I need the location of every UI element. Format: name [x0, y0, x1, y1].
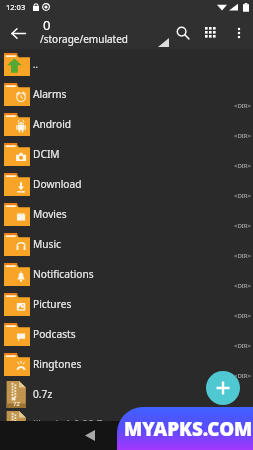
- staticText: Pictures: [33, 297, 72, 311]
- staticText: /storage/emulated: [40, 32, 128, 46]
- staticText: <DIR>: [234, 102, 252, 110]
- staticText: Alarms: [33, 87, 67, 101]
- staticText: 12:03: [6, 2, 26, 12]
- staticText: Ringtones: [33, 357, 82, 371]
- button[interactable]: Android: [0, 109, 253, 139]
- button[interactable]: Grid view: [198, 20, 224, 46]
- button[interactable]: DCIM: [0, 139, 253, 169]
- button[interactable]: Pictures: [0, 289, 253, 319]
- staticText: <DIR>: [234, 162, 252, 170]
- button[interactable]: Ringtones: [0, 349, 253, 379]
- button[interactable]: Notifications: [0, 259, 253, 289]
- staticText: libusb-1.0.23.7z: [33, 417, 108, 431]
- staticText: Notifications: [33, 267, 94, 281]
- staticText: Music: [33, 237, 61, 251]
- button[interactable]: 7Z: [0, 409, 253, 439]
- staticText: ..: [33, 58, 38, 70]
- other: Back: [85, 430, 95, 441]
- staticText: <DIR>: [234, 132, 252, 140]
- button[interactable]: ..: [0, 49, 253, 79]
- staticText: <DIR>: [234, 312, 252, 320]
- staticText: Podcasts: [33, 327, 76, 341]
- button[interactable]: Alarms: [0, 79, 253, 109]
- staticText: <DIR>: [234, 342, 252, 350]
- button[interactable]: Podcasts: [0, 319, 253, 349]
- staticText: Movies: [33, 207, 67, 221]
- button[interactable]: More options: [226, 20, 252, 46]
- button[interactable]: Back: [4, 19, 32, 47]
- button[interactable]: 7Z: [0, 379, 253, 409]
- staticText: <DIR>: [234, 282, 252, 290]
- staticText: 7Z: [13, 400, 20, 408]
- staticText: 0: [43, 16, 51, 34]
- staticText: <DIR>: [234, 252, 252, 260]
- staticText: <DIR>: [234, 372, 252, 380]
- staticText: <DIR>: [234, 222, 252, 230]
- staticText: <DIR>: [234, 192, 252, 200]
- staticText: 0.7z: [33, 387, 53, 401]
- button[interactable]: Music: [0, 229, 253, 259]
- staticText: DCIM: [33, 147, 60, 161]
- button[interactable]: Download: [0, 169, 253, 199]
- button[interactable]: Add: [206, 371, 240, 405]
- staticText: Android: [33, 117, 72, 131]
- staticText: MYAPKS.COM: [124, 416, 253, 442]
- staticText: Download: [33, 177, 82, 191]
- button[interactable]: Search: [170, 20, 196, 46]
- button[interactable]: Movies: [0, 199, 253, 229]
